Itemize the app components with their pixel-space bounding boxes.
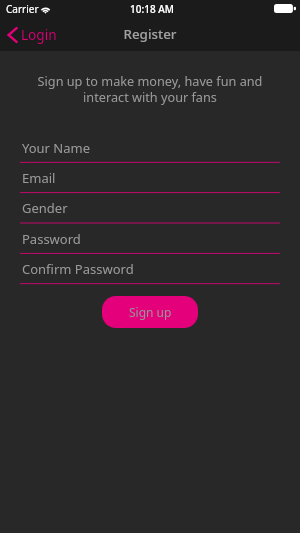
staticText: Sign up to make money, have fun and inte… [32, 72, 268, 106]
staticText: Carrier [6, 2, 39, 16]
staticText: 10:18 AM [2, 2, 300, 16]
button[interactable]: Login [4, 20, 60, 51]
button[interactable]: Email [20, 169, 280, 193]
staticText: Email [22, 169, 56, 187]
staticText: Confirm Password [22, 260, 134, 278]
staticText: Login [21, 25, 57, 44]
button[interactable]: Gender [20, 199, 280, 223]
button[interactable]: Password [20, 230, 280, 254]
button[interactable]: Confirm Password [20, 260, 280, 284]
staticText: Gender [22, 199, 68, 217]
button[interactable]: Sign up [102, 296, 198, 328]
staticText: Password [22, 230, 81, 248]
staticText: Register [0, 25, 300, 43]
staticText: Your Name [22, 139, 91, 157]
staticText: Sign up [129, 304, 172, 320]
button[interactable]: Your Name [20, 139, 280, 163]
